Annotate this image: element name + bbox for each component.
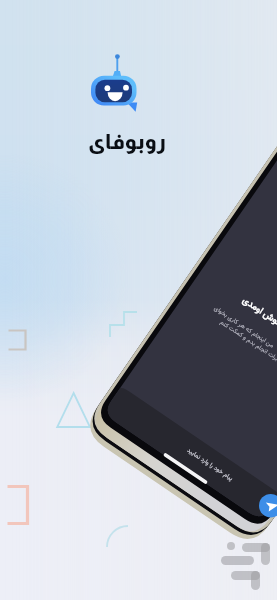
staticText: روبوفای — [88, 130, 167, 154]
staticText: برات انجام بدم و کمکت کنم — [217, 318, 277, 364]
staticText: من اینجام که هر کاری بخوای — [211, 304, 276, 351]
staticText: خوش اومدی! — [239, 294, 277, 333]
button[interactable]: Send message — [259, 494, 277, 518]
staticText: پیام خود را وارد نمایید — [184, 446, 235, 484]
